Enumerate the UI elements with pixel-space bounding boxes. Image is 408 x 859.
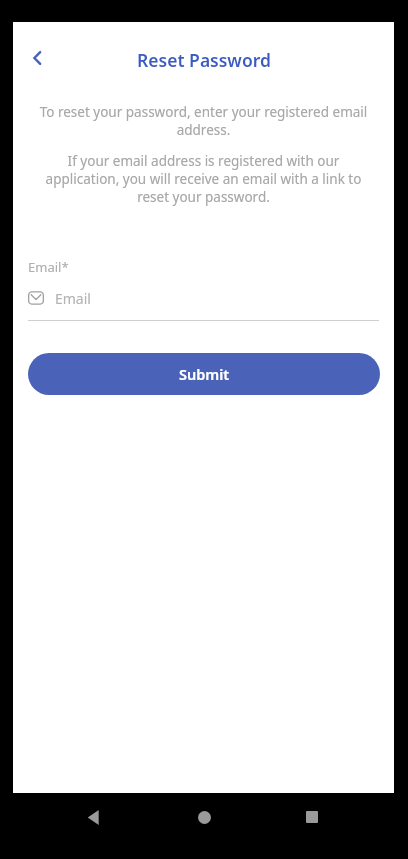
staticText: Email* xyxy=(28,258,69,276)
staticText: If your email address is registered with… xyxy=(39,152,368,206)
staticText: Email xyxy=(55,289,91,308)
button[interactable]: Back xyxy=(18,38,58,78)
other: Email xyxy=(28,290,44,306)
staticText: Submit xyxy=(179,364,230,384)
button[interactable]: Recent apps xyxy=(292,797,332,837)
button[interactable]: Submit xyxy=(28,353,380,395)
staticText: To reset your password, enter your regis… xyxy=(39,103,368,139)
button[interactable]: Home xyxy=(184,797,224,837)
staticText: Reset Password xyxy=(137,48,271,72)
button[interactable]: Email xyxy=(28,287,379,309)
button[interactable]: Back xyxy=(74,797,114,837)
